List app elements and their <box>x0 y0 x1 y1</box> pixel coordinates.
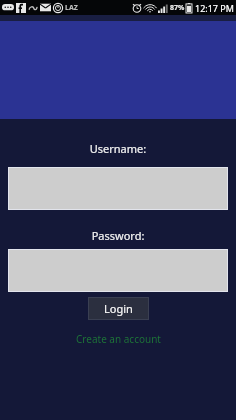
staticText: Password: <box>0 228 236 243</box>
button[interactable] <box>8 249 228 292</box>
staticText: 87% <box>170 3 185 13</box>
staticText: Username: <box>0 141 236 156</box>
button[interactable]: Login <box>88 297 149 320</box>
staticText: LAZ <box>65 3 78 13</box>
staticText: Login <box>104 301 133 316</box>
button[interactable]: Create an account <box>76 332 161 346</box>
button[interactable] <box>8 167 228 210</box>
staticText: Create an account <box>76 332 161 346</box>
staticText: 12:17 PM <box>195 2 234 14</box>
